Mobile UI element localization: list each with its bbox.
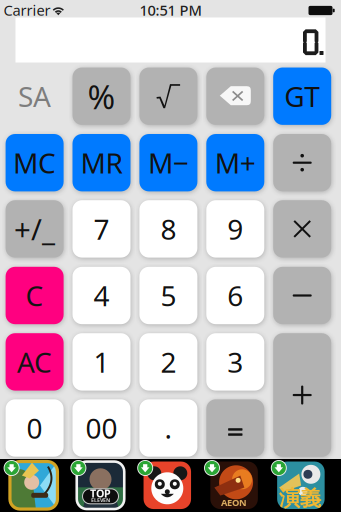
button[interactable]: 7 <box>72 200 130 258</box>
button[interactable]: 9 <box>206 200 264 258</box>
button[interactable]: 8 <box>139 200 197 258</box>
staticText: MR <box>80 144 122 181</box>
button[interactable]: . <box>139 399 197 457</box>
button[interactable]: MR <box>72 134 130 191</box>
staticText: +/_ <box>14 209 55 248</box>
staticText: 10:51 PM <box>139 0 201 20</box>
staticText: 3 <box>227 343 243 380</box>
button[interactable]: 0 <box>6 399 64 457</box>
staticText: % <box>87 74 115 118</box>
staticText: 00 <box>85 409 117 447</box>
button[interactable]: 1 <box>72 333 130 391</box>
staticText: GT <box>284 78 320 115</box>
button[interactable]: C <box>6 267 64 324</box>
button[interactable]: 5 <box>139 267 197 324</box>
staticText: 1 <box>93 343 109 380</box>
button[interactable]: SA <box>6 67 64 125</box>
button[interactable]: 4 <box>72 267 130 324</box>
staticText: 0 <box>27 409 43 447</box>
button[interactable]: Equals <box>206 399 264 457</box>
staticText: 5 <box>160 277 176 314</box>
button[interactable]: 00 <box>72 399 130 457</box>
button[interactable]: MC <box>6 134 64 191</box>
button[interactable]: Plus <box>273 333 331 457</box>
staticText: . <box>164 409 172 447</box>
staticText: C <box>26 277 44 314</box>
button[interactable]: Multiply <box>273 200 331 258</box>
button[interactable]: Minus <box>273 267 331 324</box>
button[interactable]: Install app 5 <box>277 462 325 509</box>
button[interactable]: M− <box>139 134 197 191</box>
staticText: 2 <box>160 343 176 380</box>
button[interactable]: Install app 4 <box>210 462 258 509</box>
staticText: 6 <box>227 277 243 314</box>
button[interactable]: 3 <box>206 333 264 391</box>
button[interactable]: Delete <box>206 67 264 125</box>
button[interactable]: AC <box>6 333 64 391</box>
button[interactable]: 6 <box>206 267 264 324</box>
staticText: SA <box>18 78 51 115</box>
staticText: Carrier <box>3 0 50 20</box>
staticText: M− <box>148 144 189 181</box>
button[interactable]: GT <box>273 67 331 125</box>
staticText: TOP <box>90 486 111 500</box>
button[interactable]: Install app 2 <box>77 462 124 509</box>
staticText: M+ <box>215 144 256 181</box>
button[interactable]: M+ <box>206 134 264 191</box>
button[interactable]: +/_ <box>6 200 64 258</box>
staticText: 7 <box>93 210 109 247</box>
staticText: ELEVEN <box>91 497 110 504</box>
button[interactable]: Install app 1 <box>10 462 57 509</box>
staticText: 9 <box>227 210 243 247</box>
button[interactable]: Square root <box>139 67 197 125</box>
button[interactable]: Install app 3 <box>143 462 191 509</box>
button[interactable]: Divide <box>273 134 331 191</box>
staticText: 演義 <box>279 485 321 511</box>
button[interactable]: % <box>72 67 130 125</box>
staticText: 8 <box>160 210 176 247</box>
staticText: 4 <box>93 277 109 314</box>
staticText: AEON <box>221 496 247 508</box>
staticText: MC <box>13 144 56 181</box>
staticText: AC <box>17 343 52 380</box>
button[interactable]: 2 <box>139 333 197 391</box>
